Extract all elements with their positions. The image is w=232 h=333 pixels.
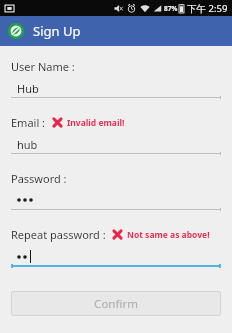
- button[interactable]: [11, 249, 221, 271]
- button[interactable]: [11, 193, 221, 213]
- button[interactable]: hub: [11, 137, 221, 157]
- staticText: Password :: [11, 171, 67, 186]
- staticText: Invalid email!: [67, 117, 125, 129]
- staticText: Sign Up: [33, 22, 81, 40]
- staticText: 下午 2:59: [187, 2, 228, 15]
- staticText: User Name :: [11, 59, 75, 74]
- staticText: 87%: [164, 4, 178, 13]
- other: Error: [52, 117, 63, 128]
- other: App logo: [7, 22, 25, 40]
- button[interactable]: Confirm: [11, 291, 221, 316]
- staticText: Hub: [17, 81, 39, 95]
- button[interactable]: Hub: [11, 81, 221, 101]
- button[interactable]: App logo: [0, 16, 232, 46]
- staticText: Repeat password :: [11, 227, 106, 242]
- staticText: Not same as above!: [127, 229, 210, 241]
- other: Error: [112, 229, 123, 240]
- staticText: hub: [17, 137, 38, 151]
- staticText: Email :: [11, 115, 46, 130]
- staticText: Confirm: [94, 296, 138, 312]
